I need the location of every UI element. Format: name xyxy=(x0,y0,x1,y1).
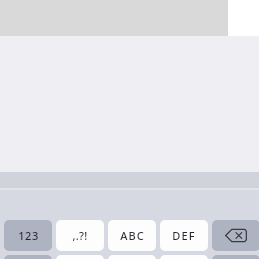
button[interactable]: DEF xyxy=(160,220,208,251)
button[interactable] xyxy=(108,255,156,259)
staticText: ,.?! xyxy=(72,228,88,243)
button[interactable] xyxy=(160,255,208,259)
button[interactable] xyxy=(4,255,52,259)
button[interactable] xyxy=(212,255,259,259)
staticText: 123 xyxy=(18,228,39,243)
button[interactable]: ABC xyxy=(108,220,156,251)
staticText: ABC xyxy=(120,228,145,243)
button[interactable]: ,.?! xyxy=(56,220,104,251)
button[interactable] xyxy=(56,255,104,259)
staticText: DEF xyxy=(172,228,196,243)
button[interactable]: Backspace xyxy=(212,220,259,251)
button[interactable]: 123 xyxy=(4,220,52,251)
